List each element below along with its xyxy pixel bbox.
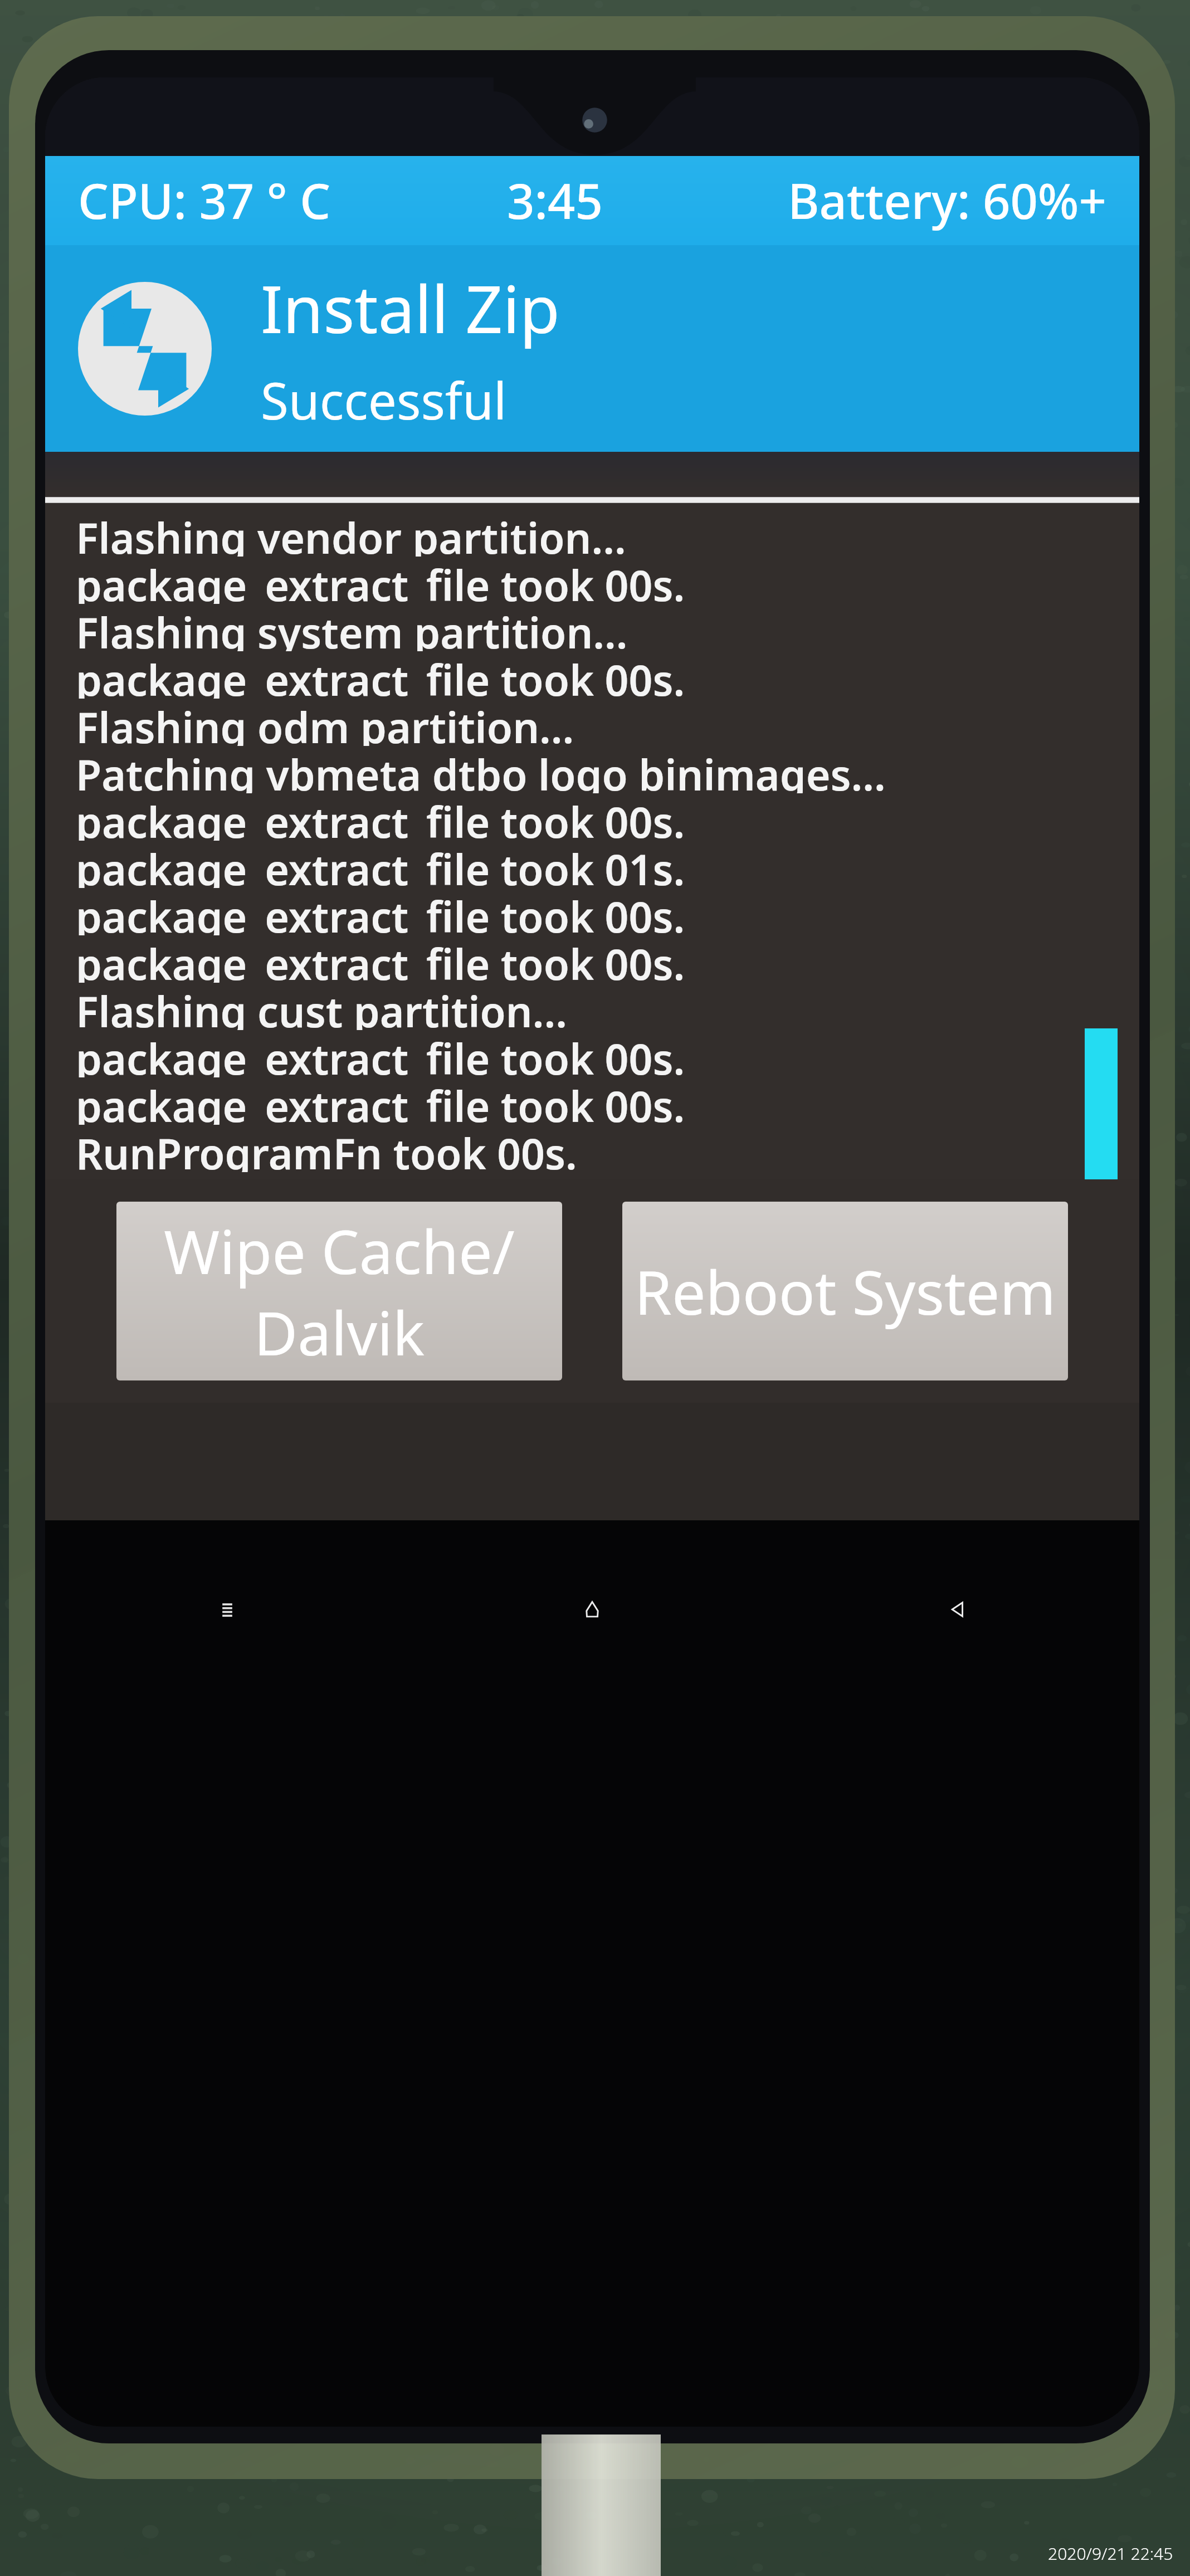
staticText: package_extract_file took 00s. <box>76 793 685 841</box>
staticText: RunProgramFn took 00s. <box>76 1125 577 1172</box>
staticText: package_extract_file took 00s. <box>76 1077 685 1125</box>
staticText: Battery: 60%+ <box>788 168 1106 233</box>
staticText: Install Zip <box>261 264 560 353</box>
staticText: package_extract_file took 01s. <box>76 841 685 888</box>
staticText: Flashing vendor partition... <box>76 509 626 557</box>
staticText: Successful <box>261 365 507 434</box>
staticText: Flashing system partition... <box>76 604 628 651</box>
staticText: CPU: 37 ° C <box>78 168 331 233</box>
button[interactable]: Wipe Cache/Dalvik <box>116 1202 562 1380</box>
staticText: Patching vbmeta dtbo logo binimages... <box>76 746 886 793</box>
other: TWRP logo <box>78 282 212 416</box>
staticText: package_extract_file took 00s. <box>76 557 685 604</box>
staticText: Flashing odm partition... <box>76 699 574 746</box>
staticText: package_extract_file took 00s. <box>76 935 685 983</box>
staticText: Reboot System <box>635 1251 1056 1332</box>
staticText: Wipe Cache/Dalvik <box>116 1210 562 1373</box>
staticText: package_extract_file took 00s. <box>76 888 685 935</box>
button[interactable]: Home <box>409 1520 774 1699</box>
staticText: Flashing cust partition... <box>76 983 567 1030</box>
button[interactable]: TWRP logo <box>45 245 1139 452</box>
staticText: 2020/9/21 22:45 <box>1048 2542 1173 2565</box>
staticText: package_extract_file took 00s. <box>76 1030 685 1077</box>
button[interactable]: Back <box>774 1520 1139 1699</box>
button[interactable]: Recent apps <box>45 1520 409 1699</box>
staticText: 3:45 <box>507 168 603 233</box>
staticText: package_extract_file took 00s. <box>76 651 685 699</box>
staticText: RunProgramFn took 00s. <box>76 1172 577 1179</box>
button[interactable]: Reboot System <box>622 1202 1068 1380</box>
